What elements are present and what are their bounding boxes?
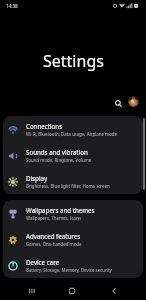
- button[interactable]: Advanced features: [3, 226, 143, 252]
- staticText: Sound mode, Ringtone, Volume: [26, 157, 92, 163]
- button[interactable]: Recent apps: [24, 283, 40, 299]
- staticText: Games, One-handed mode: [26, 241, 82, 247]
- button[interactable]: Device care: [3, 252, 143, 278]
- staticText: Settings: [43, 50, 104, 72]
- button[interactable]: Wallpapers and themes: [3, 200, 143, 226]
- button[interactable]: Home: [64, 283, 80, 299]
- staticText: Wallpapers and themes: [26, 206, 95, 214]
- staticText: Wi-Fi, Bluetooth, Data usage, Airplane m…: [26, 131, 118, 137]
- staticText: Advanced features: [26, 232, 81, 240]
- staticText: Wallpapers, Themes, Icons: [26, 215, 82, 221]
- button[interactable]: Profile: [128, 96, 139, 107]
- button[interactable]: Display: [3, 168, 143, 194]
- button[interactable]: Back: [106, 283, 122, 299]
- staticText: Brightness, Blue light filter, Home scre…: [26, 183, 110, 189]
- staticText: Display: [26, 174, 48, 182]
- staticText: Device care: [26, 258, 60, 266]
- staticText: Sounds and vibration: [26, 148, 88, 156]
- staticText: Connections: [26, 122, 63, 130]
- staticText: Battery, Storage, Memory, Device securit…: [26, 267, 112, 273]
- button[interactable]: Connections: [3, 116, 143, 142]
- staticText: 14:38: [6, 3, 18, 9]
- button[interactable]: Sounds and vibration: [3, 142, 143, 168]
- button[interactable]: Search: [112, 97, 125, 110]
